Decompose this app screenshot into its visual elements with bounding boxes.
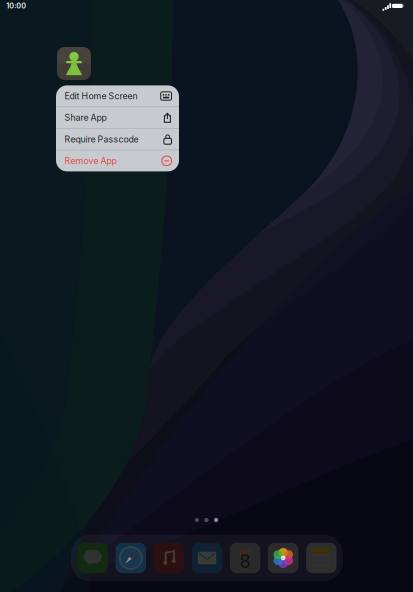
button[interactable]: Safari — [116, 543, 146, 573]
button[interactable]: Photos — [268, 543, 298, 573]
button[interactable]: Notes — [306, 543, 336, 573]
button[interactable]: Share App — [56, 107, 179, 128]
staticText: 10:00 — [6, 1, 26, 10]
staticText: Require Passcode — [64, 134, 138, 144]
staticText: Edit Home Screen — [64, 91, 137, 101]
staticText: Remove App — [64, 155, 116, 166]
staticText: 8 — [240, 551, 251, 572]
button[interactable]: Music — [154, 543, 184, 573]
staticText: WED — [239, 549, 252, 556]
button[interactable]: Mail — [192, 543, 222, 573]
button[interactable]: Calendar — [230, 543, 260, 573]
button[interactable]: Chess app — [57, 47, 91, 80]
staticText: Share App — [64, 112, 106, 123]
button[interactable]: Messages — [77, 543, 108, 573]
button[interactable]: Edit Home Screen — [56, 85, 179, 107]
button[interactable]: Remove App — [56, 150, 179, 171]
button[interactable]: Require Passcode — [56, 129, 179, 150]
